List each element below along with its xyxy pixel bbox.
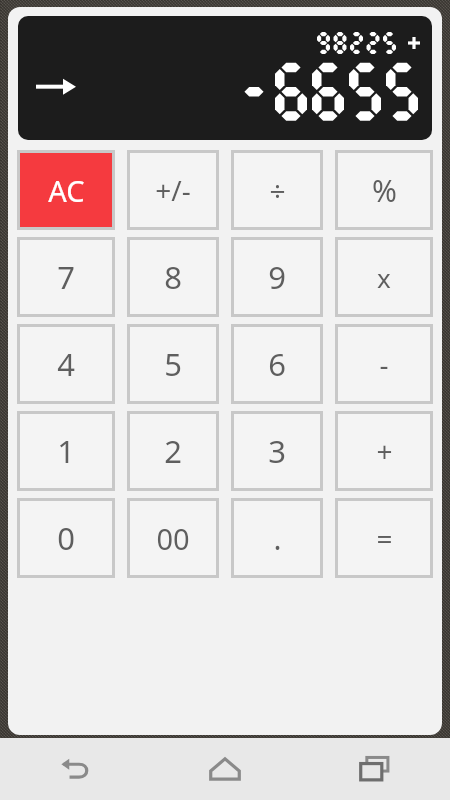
staticText: % (372, 170, 397, 211)
staticText: +/- (155, 171, 191, 209)
button[interactable]: ÷ (231, 150, 323, 230)
button[interactable]: + (335, 411, 433, 491)
staticText: AC (48, 171, 85, 210)
staticText: + (376, 432, 393, 470)
staticText: 5 (164, 343, 182, 385)
button[interactable]: = (335, 498, 433, 578)
button[interactable]: - (335, 324, 433, 404)
button[interactable]: 0 (17, 498, 115, 578)
staticText: 00 (156, 519, 190, 558)
staticText: 0 (57, 517, 75, 559)
button[interactable]: 7 (17, 237, 115, 317)
button[interactable]: 8 (127, 237, 219, 317)
staticText: 4 (57, 343, 75, 385)
staticText: x (377, 260, 391, 295)
staticText: ÷ (269, 171, 286, 209)
staticText: 8 (164, 256, 182, 298)
staticText: 9 (268, 256, 286, 298)
button[interactable]: 6 (231, 324, 323, 404)
button[interactable]: 3 (231, 411, 323, 491)
staticText: = (376, 519, 393, 557)
button[interactable]: x (335, 237, 433, 317)
button[interactable]: 5 (127, 324, 219, 404)
staticText: 3 (268, 430, 286, 472)
button[interactable]: % (335, 150, 433, 230)
staticText: - (379, 345, 389, 383)
button[interactable]: Recent apps (300, 738, 450, 800)
button[interactable]: Back (0, 738, 150, 800)
button[interactable]: 1 (17, 411, 115, 491)
button[interactable]: 4 (17, 324, 115, 404)
button[interactable]: 9 (231, 237, 323, 317)
staticText: 7 (57, 256, 75, 298)
staticText: 1 (57, 430, 75, 472)
button[interactable]: AC (17, 150, 115, 230)
button[interactable]: . (231, 498, 323, 578)
button[interactable]: Home (150, 738, 300, 800)
staticText: 2 (164, 430, 182, 472)
button[interactable]: +/- (127, 150, 219, 230)
button[interactable]: 2 (127, 411, 219, 491)
button[interactable]: 00 (127, 498, 219, 578)
staticText: 6 (268, 343, 286, 385)
staticText: . (273, 518, 282, 559)
